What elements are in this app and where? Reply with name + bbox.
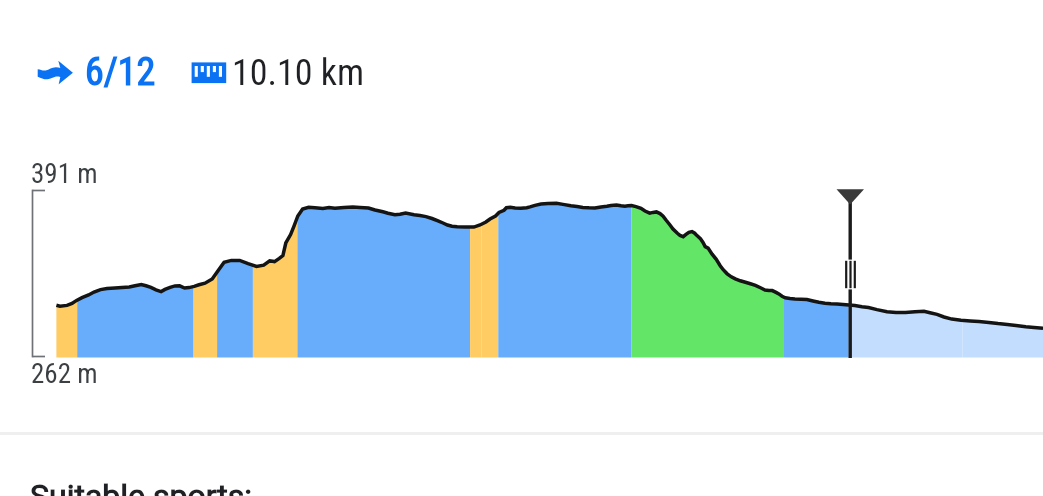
staticText: 391 m <box>31 158 98 190</box>
staticText: 6/12 <box>85 50 156 95</box>
staticText: Suitable sports: <box>30 477 253 496</box>
staticText: 262 m <box>31 358 98 390</box>
staticText: 10.10 km <box>232 52 365 94</box>
button[interactable]: Distance 10.10 km <box>188 50 366 90</box>
button[interactable]: Waypoint 6 of 12 <box>33 50 158 90</box>
